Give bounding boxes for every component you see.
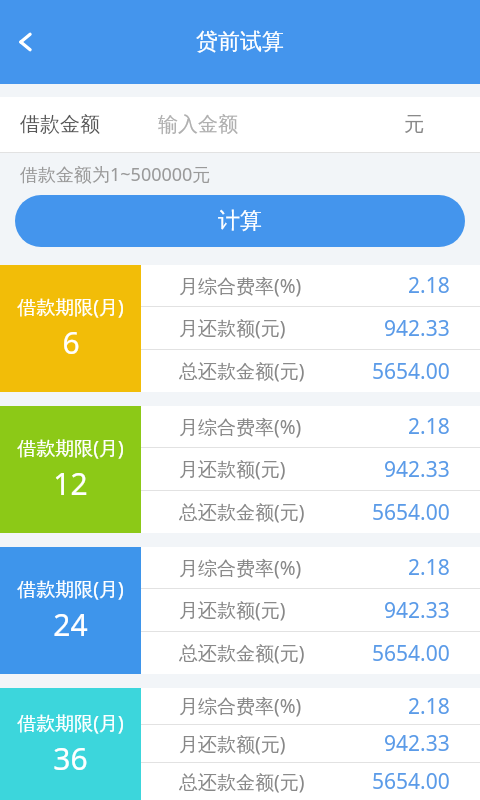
staticText: 月还款额(元) [179, 731, 286, 757]
staticText: 942.33 [384, 314, 450, 343]
staticText: 月还款额(元) [179, 456, 286, 482]
staticText: 2.18 [408, 271, 450, 300]
staticText: 942.33 [384, 455, 450, 484]
staticText: 月还款额(元) [179, 597, 286, 623]
staticText: 总还款金额(元) [179, 358, 305, 384]
staticText: 6 [62, 322, 80, 363]
staticText: 5654.00 [372, 639, 450, 668]
staticText: 月综合费率(%) [179, 273, 302, 299]
staticText: 元 [404, 112, 424, 137]
staticText: 5654.00 [372, 357, 450, 386]
button[interactable]: 借款期限(月) [0, 406, 480, 533]
staticText: 月综合费率(%) [179, 555, 302, 581]
button[interactable]: 借款期限(月) [0, 688, 480, 800]
staticText: 计算 [218, 207, 262, 235]
staticText: 2.18 [408, 412, 450, 441]
staticText: 借款期限(月) [17, 576, 124, 602]
staticText: 5654.00 [372, 767, 450, 796]
staticText: 36 [53, 738, 88, 779]
button[interactable]: 计算 [15, 195, 465, 247]
staticText: 942.33 [384, 596, 450, 625]
staticText: 借款期限(月) [17, 435, 124, 461]
staticText: 借款金额 [20, 112, 100, 137]
staticText: 2.18 [408, 553, 450, 582]
staticText: 借款期限(月) [17, 710, 124, 736]
staticText: 942.33 [384, 729, 450, 758]
staticText: 借款金额为1~500000元 [20, 162, 211, 187]
staticText: 月还款额(元) [179, 315, 286, 341]
button[interactable]: Back [4, 19, 50, 65]
staticText: 借款期限(月) [17, 294, 124, 320]
staticText: 月综合费率(%) [179, 414, 302, 440]
staticText: 总还款金额(元) [179, 640, 305, 666]
staticText: 总还款金额(元) [179, 769, 305, 795]
staticText: 12 [53, 463, 88, 504]
button[interactable]: 借款期限(月) [0, 547, 480, 674]
button[interactable]: 借款金额 [0, 97, 480, 152]
staticText: 贷前试算 [196, 28, 284, 56]
staticText: 24 [53, 604, 88, 645]
staticText: 月综合费率(%) [179, 693, 302, 719]
staticText: 输入金额 [158, 112, 404, 137]
button[interactable]: 借款期限(月) [0, 265, 480, 392]
staticText: 总还款金额(元) [179, 499, 305, 525]
staticText: 2.18 [408, 692, 450, 721]
staticText: 5654.00 [372, 498, 450, 527]
